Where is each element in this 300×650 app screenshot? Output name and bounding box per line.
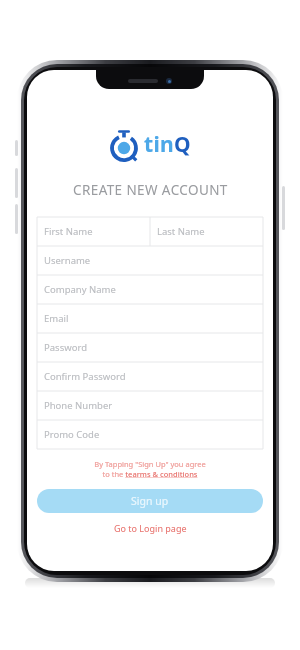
staticText: Promo Code [44, 428, 100, 441]
button[interactable]: Company Name [37, 275, 263, 304]
staticText: Confirm Password [44, 370, 126, 383]
staticText: Last Name [157, 225, 205, 238]
button[interactable]: Promo Code [37, 420, 263, 449]
staticText: By Tapping "Sign Up" you agree to the te… [47, 459, 253, 479]
staticText: Sign up [131, 494, 169, 508]
staticText: Phone Number [44, 399, 113, 412]
button[interactable]: Password [37, 333, 263, 362]
staticText: CREATE NEW ACCOUNT [73, 181, 228, 199]
staticText: Email [44, 312, 69, 325]
staticText: Go to Login page [114, 522, 187, 534]
staticText: Password [44, 341, 87, 354]
button[interactable]: Username [37, 246, 263, 275]
button[interactable]: First Name [37, 217, 150, 246]
button[interactable]: Last Name [150, 217, 263, 246]
button[interactable]: Email [37, 304, 263, 333]
staticText: tinQ [144, 130, 191, 159]
other: tinQ logo [109, 127, 139, 161]
button[interactable]: Go to Login page [104, 520, 197, 536]
staticText: Username [44, 254, 91, 267]
button[interactable]: Phone Number [37, 391, 263, 420]
staticText: First Name [44, 225, 93, 238]
button[interactable]: Sign up [37, 489, 263, 513]
button[interactable]: By Tapping "Sign Up" you agree to the te… [27, 458, 273, 480]
staticText: Company Name [44, 283, 116, 296]
button[interactable]: Confirm Password [37, 362, 263, 391]
